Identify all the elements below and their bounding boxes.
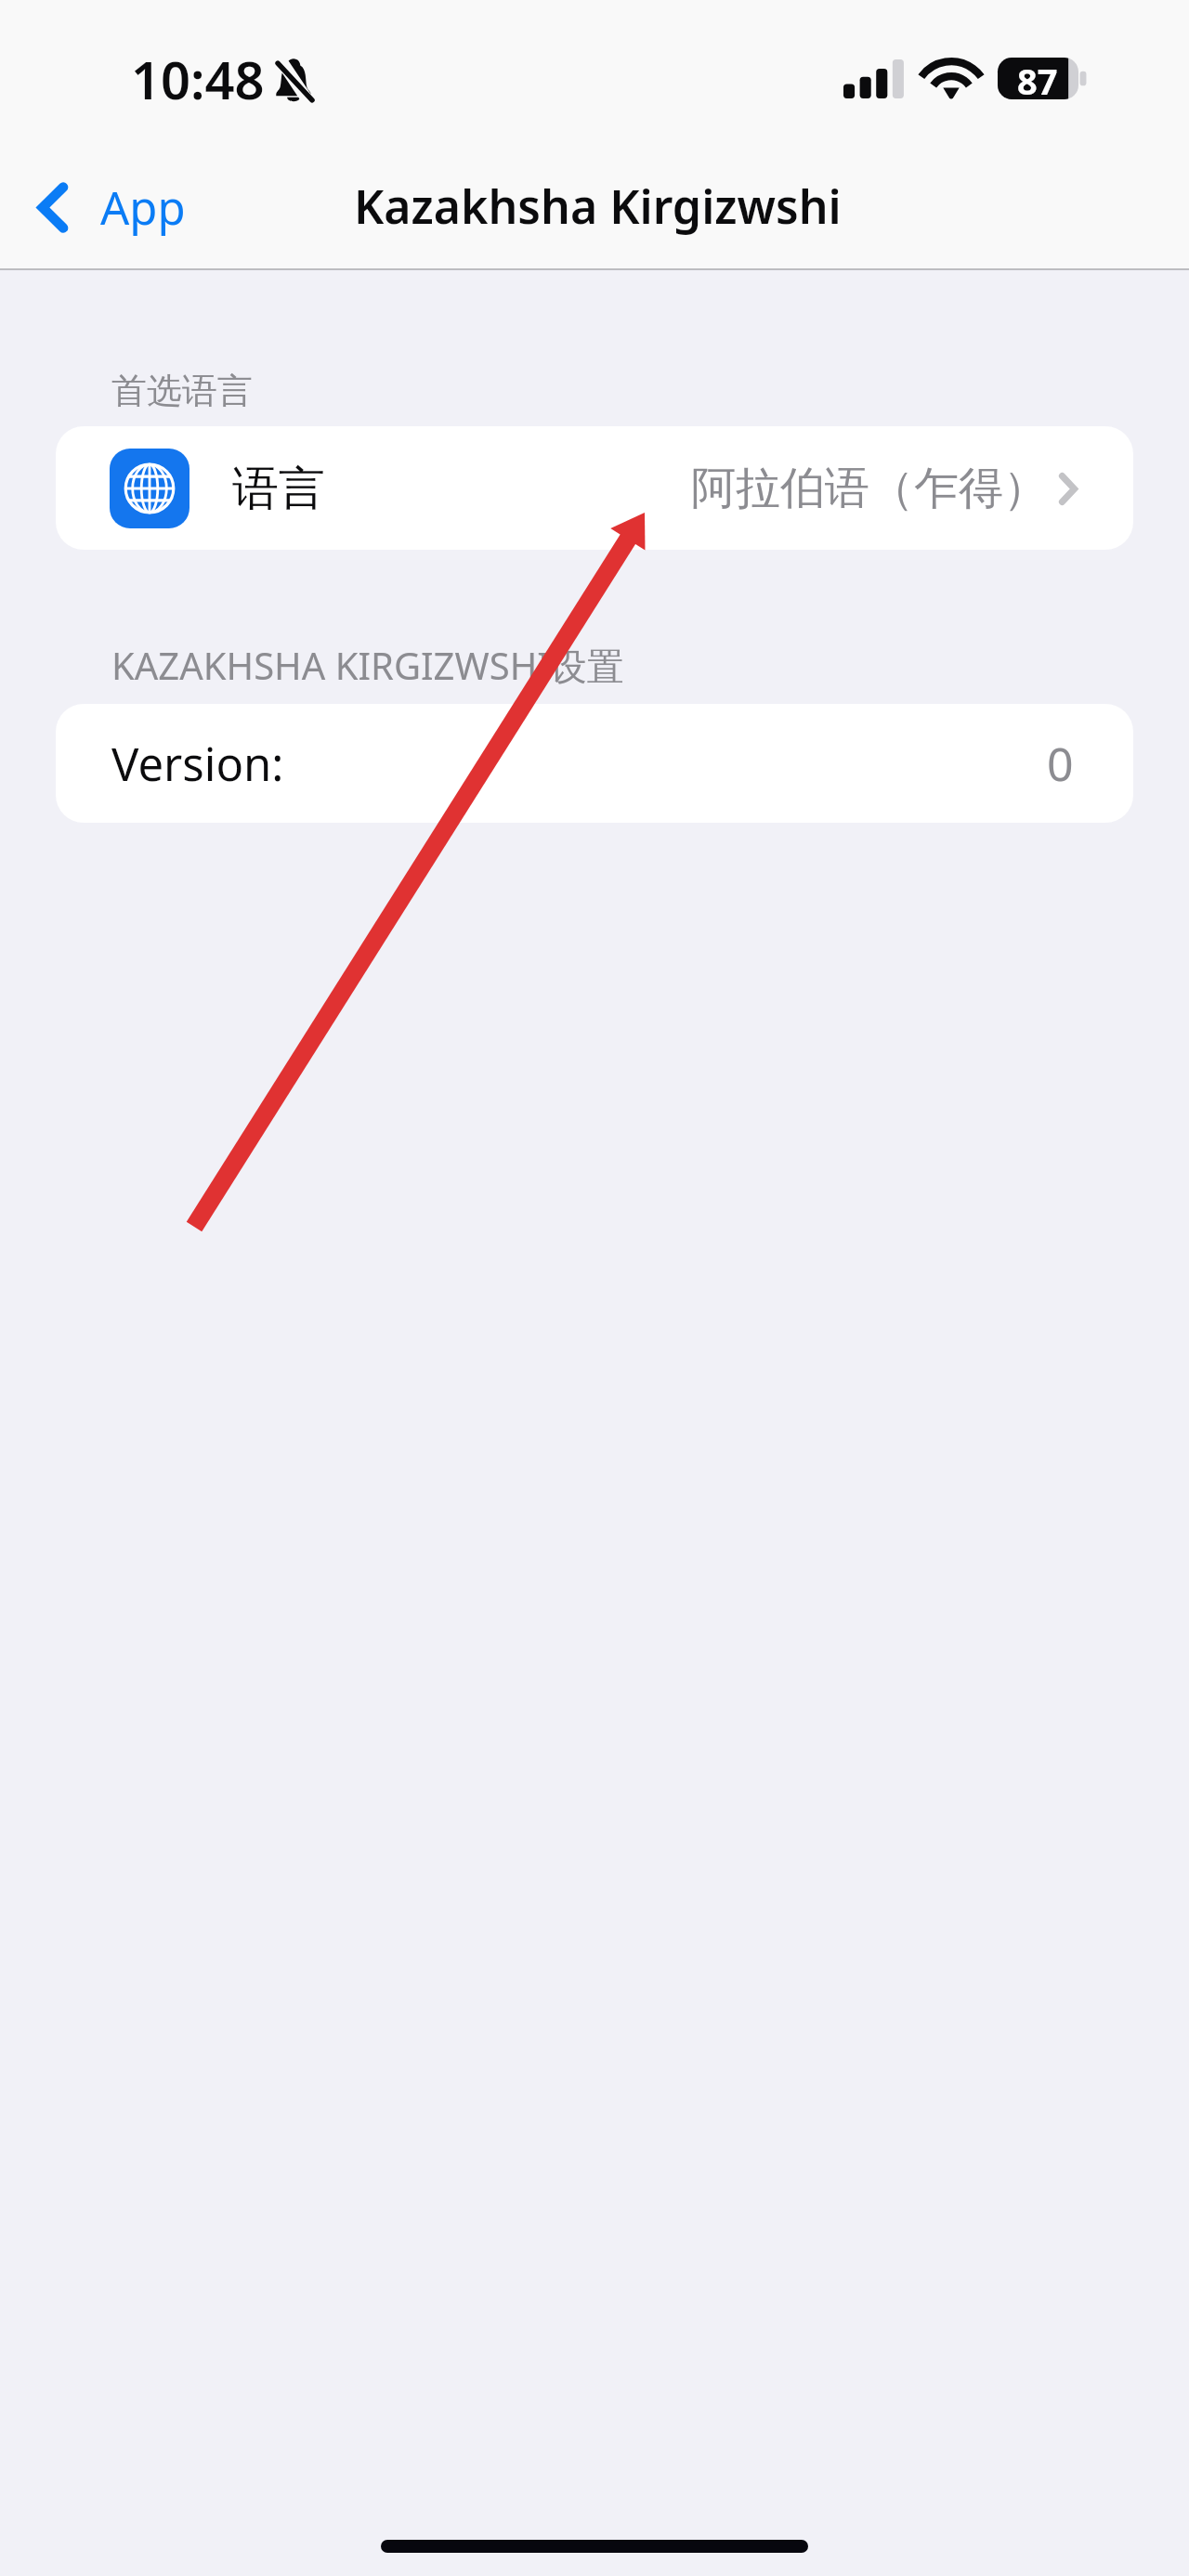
other: Wi-Fi connected [924, 59, 978, 98]
button[interactable]: App [24, 156, 204, 258]
staticText: KAZAKHSHA KIRGIZWSHI设置 [111, 640, 624, 691]
other: Cellular signal [843, 59, 904, 98]
staticText: 首选语言 [111, 369, 253, 413]
button[interactable]: Version: [56, 704, 1133, 823]
other: Silent mode on [273, 57, 314, 102]
staticText: 87 [1017, 57, 1058, 98]
other: Battery 87 percent [998, 58, 1087, 99]
staticText: 0 [1047, 732, 1074, 795]
staticText: 阿拉伯语（乍得） [691, 461, 1048, 516]
staticText: 10:48 [131, 44, 265, 114]
staticText: App [100, 176, 186, 239]
other: Home indicator [381, 2540, 808, 2553]
staticText: 语言 [232, 460, 325, 518]
staticText: Version: [111, 733, 284, 795]
button[interactable]: 语言 [56, 426, 1133, 550]
staticText: Kazakhsha Kirgizwshi [354, 175, 842, 238]
